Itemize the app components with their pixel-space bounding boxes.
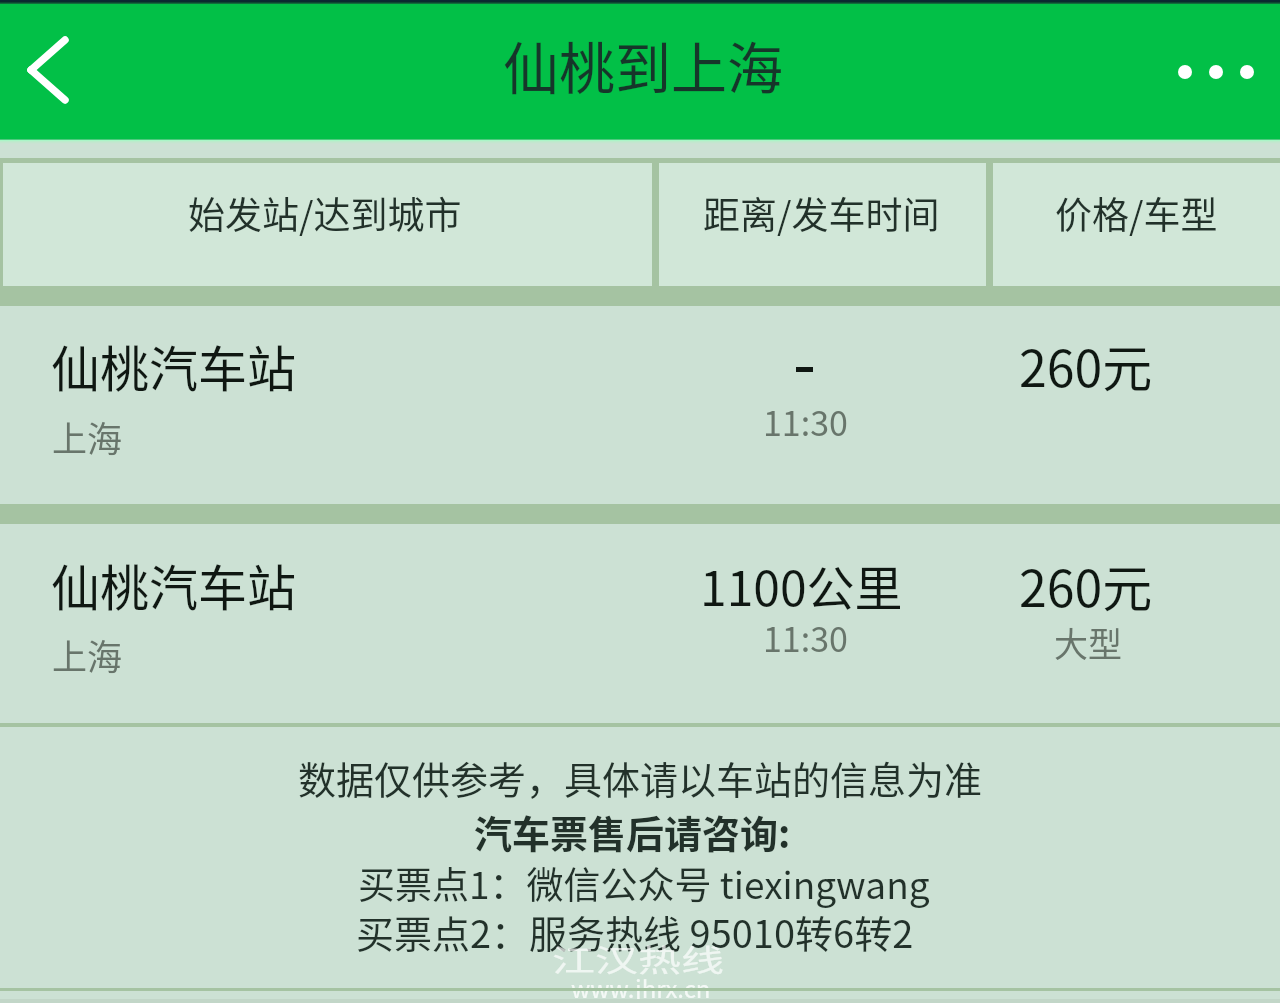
staticText: 始发站/达到城市 bbox=[188, 186, 462, 240]
staticText: 价格/车型 bbox=[1055, 186, 1218, 240]
staticText: 买票点2：服务热线 95010转6转2 bbox=[356, 904, 914, 959]
button[interactable]: More options bbox=[1168, 44, 1264, 100]
button[interactable] bbox=[659, 163, 986, 286]
staticText: 11:30 bbox=[763, 397, 848, 446]
button[interactable]: Back bbox=[2, 26, 94, 114]
staticText: 距离/发车时间 bbox=[703, 186, 940, 240]
staticText: 11:30 bbox=[763, 613, 848, 662]
staticText: 仙桃到上海 bbox=[503, 24, 783, 105]
staticText: 上海 bbox=[52, 629, 123, 680]
staticText: 江汉热线 bbox=[552, 937, 724, 979]
button[interactable] bbox=[3, 163, 652, 286]
staticText: 上海 bbox=[52, 411, 123, 462]
staticText: 买票点1：微信公众号 tiexingwang bbox=[358, 856, 930, 910]
staticText: 仙桃汽车站 bbox=[51, 330, 297, 401]
staticText: 1100公里 bbox=[700, 550, 903, 620]
staticText: www.jhrx.cn bbox=[571, 970, 711, 1003]
staticText: 数据仅供参考，具体请以车站的信息为准 bbox=[298, 750, 983, 805]
button[interactable] bbox=[993, 163, 1280, 286]
staticText: 260元 bbox=[1019, 549, 1153, 621]
staticText: 大型 bbox=[1054, 618, 1122, 667]
button[interactable] bbox=[0, 524, 1280, 723]
staticText: 汽车票售后请咨询: bbox=[474, 804, 791, 859]
staticText: 仙桃汽车站 bbox=[51, 549, 297, 620]
button[interactable] bbox=[0, 306, 1280, 504]
staticText: 260元 bbox=[1019, 329, 1153, 401]
